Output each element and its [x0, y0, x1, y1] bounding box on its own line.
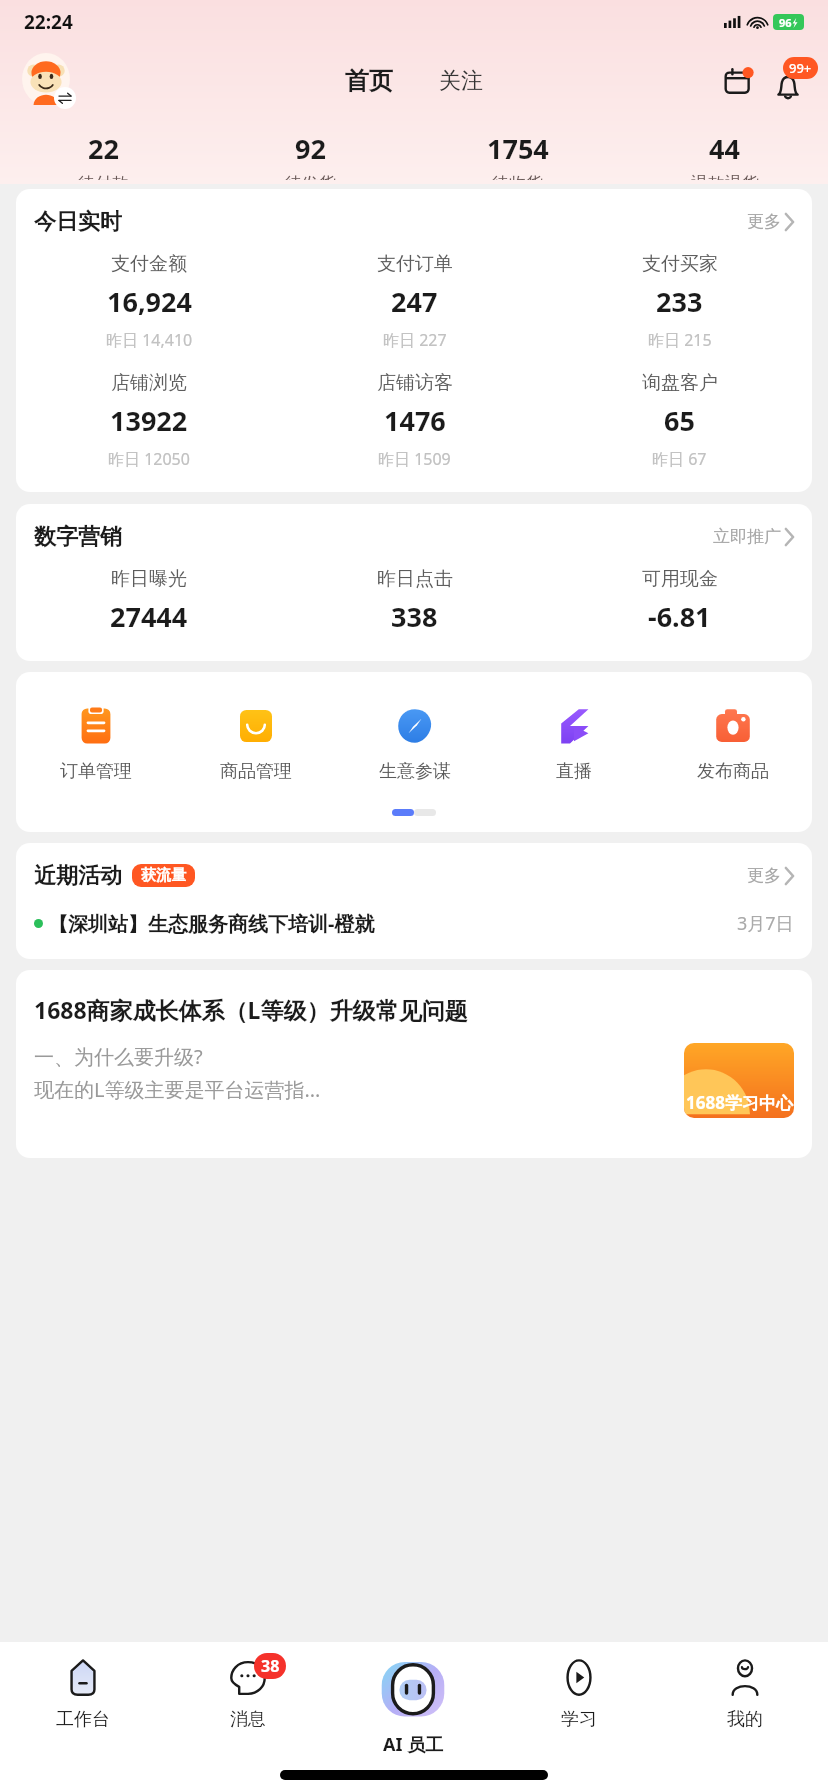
button[interactable]: 发布商品 [653, 702, 812, 787]
button[interactable]: 支付订单 [282, 252, 547, 351]
button[interactable]: 昨日曝光 [16, 567, 282, 635]
staticText: 生意参谋 [379, 760, 451, 783]
staticText: 商品管理 [220, 760, 292, 783]
staticText: 65 [664, 402, 695, 439]
staticText: 338 [391, 598, 438, 635]
staticText: 1754 [487, 130, 549, 167]
button[interactable]: 1754 [414, 126, 621, 184]
staticText: 询盘客户 [642, 371, 718, 395]
staticText: 支付金额 [111, 252, 187, 276]
staticText: 立即推广 [713, 526, 781, 547]
staticText: 昨日曝光 [111, 567, 187, 591]
button[interactable]: 更多 [743, 207, 798, 236]
staticText: -6.81 [648, 598, 711, 635]
staticText: 【深圳站】生态服务商线下培训-橙就 [48, 910, 737, 937]
staticText: 消息 [230, 1708, 266, 1731]
staticText: 支付买家 [642, 252, 718, 276]
button[interactable]: 44 [621, 126, 828, 184]
staticText: 待收货 [492, 173, 543, 180]
staticText: 今日实时 [34, 208, 122, 236]
staticText: 待付款 [78, 173, 129, 180]
staticText: 96 [779, 15, 792, 30]
staticText: 22:24 [24, 9, 73, 35]
staticText: 昨日 14,410 [106, 329, 193, 351]
staticText: 13922 [110, 402, 188, 439]
staticText: 我的 [727, 1708, 763, 1731]
staticText: 昨日 67 [652, 448, 707, 470]
button[interactable]: 学习 [496, 1656, 662, 1731]
staticText: 店铺浏览 [111, 371, 187, 395]
staticText: 学习 [561, 1708, 597, 1731]
button[interactable]: AI 员工 [330, 1656, 496, 1757]
button[interactable]: 昨日点击 [282, 567, 547, 635]
button[interactable]: 工作台 [0, 1656, 165, 1731]
staticText: 22 [88, 130, 119, 167]
button[interactable]: 支付买家 [547, 252, 812, 351]
staticText: 关注 [439, 67, 483, 95]
button[interactable]: 【深圳站】生态服务商线下培训-橙就 [16, 890, 812, 959]
staticText: 一、为什么要升级? [34, 1043, 203, 1070]
staticText: 昨日 227 [383, 329, 447, 351]
staticText: 获流量 [141, 866, 186, 885]
button[interactable]: 我的 [662, 1656, 828, 1731]
button[interactable]: 店铺访客 [282, 371, 547, 470]
staticText: 92 [295, 130, 326, 167]
staticText: 首页 [345, 66, 393, 96]
button[interactable]: 关注 [429, 61, 493, 101]
button[interactable]: 商品管理 [176, 702, 335, 787]
staticText: 99+ [789, 59, 812, 77]
button[interactable]: 直播 [494, 702, 653, 787]
button[interactable]: 支付金额 [16, 252, 282, 351]
button[interactable]: Notifications [766, 59, 810, 103]
staticText: 订单管理 [60, 760, 132, 783]
staticText: 更多 [747, 865, 781, 886]
staticText: 退款退货 [691, 173, 759, 180]
button[interactable]: Account switch [20, 53, 76, 109]
staticText: 1688商家成长体系（L等级）升级常见问题 [34, 994, 468, 1025]
staticText: AI 员工 [383, 1732, 444, 1757]
button[interactable]: 更多 [743, 861, 798, 890]
button[interactable]: 22 [0, 126, 207, 184]
staticText: 工作台 [56, 1708, 110, 1731]
staticText: 昨日 1509 [378, 448, 451, 470]
staticText: 可用现金 [642, 567, 718, 591]
staticText: 待发货 [285, 173, 336, 180]
button[interactable]: 立即推广 [709, 522, 798, 551]
button[interactable]: 询盘客户 [547, 371, 812, 470]
button[interactable]: 首页 [335, 60, 403, 102]
staticText: 店铺访客 [377, 371, 453, 395]
staticText: 昨日 215 [648, 329, 712, 351]
staticText: 支付订单 [377, 252, 453, 276]
button[interactable]: 订单管理 [16, 702, 176, 787]
staticText: 16,924 [107, 283, 192, 320]
staticText: 27444 [110, 598, 188, 635]
staticText: 44 [709, 130, 740, 167]
button[interactable]: 生意参谋 [335, 702, 494, 787]
staticText: 1688学习中心 [686, 1091, 793, 1114]
staticText: 233 [656, 283, 703, 320]
button[interactable]: Calendar [718, 61, 758, 101]
staticText: 更多 [747, 211, 781, 232]
staticText: 现在的L等级主要是平台运营指… [34, 1076, 321, 1103]
button[interactable]: 店铺浏览 [16, 371, 282, 470]
staticText: 3月7日 [737, 911, 794, 936]
button[interactable]: 92 [207, 126, 414, 184]
staticText: 昨日 12050 [108, 448, 190, 470]
staticText: 38 [261, 1655, 280, 1677]
staticText: 发布商品 [697, 760, 769, 783]
staticText: 直播 [556, 760, 592, 783]
button[interactable]: 可用现金 [547, 567, 812, 635]
staticText: 近期活动 [34, 862, 122, 890]
staticText: 1476 [384, 402, 446, 439]
staticText: 247 [391, 283, 438, 320]
staticText: 昨日点击 [377, 567, 453, 591]
staticText: 数字营销 [34, 523, 122, 551]
button[interactable]: 38 [165, 1656, 330, 1731]
